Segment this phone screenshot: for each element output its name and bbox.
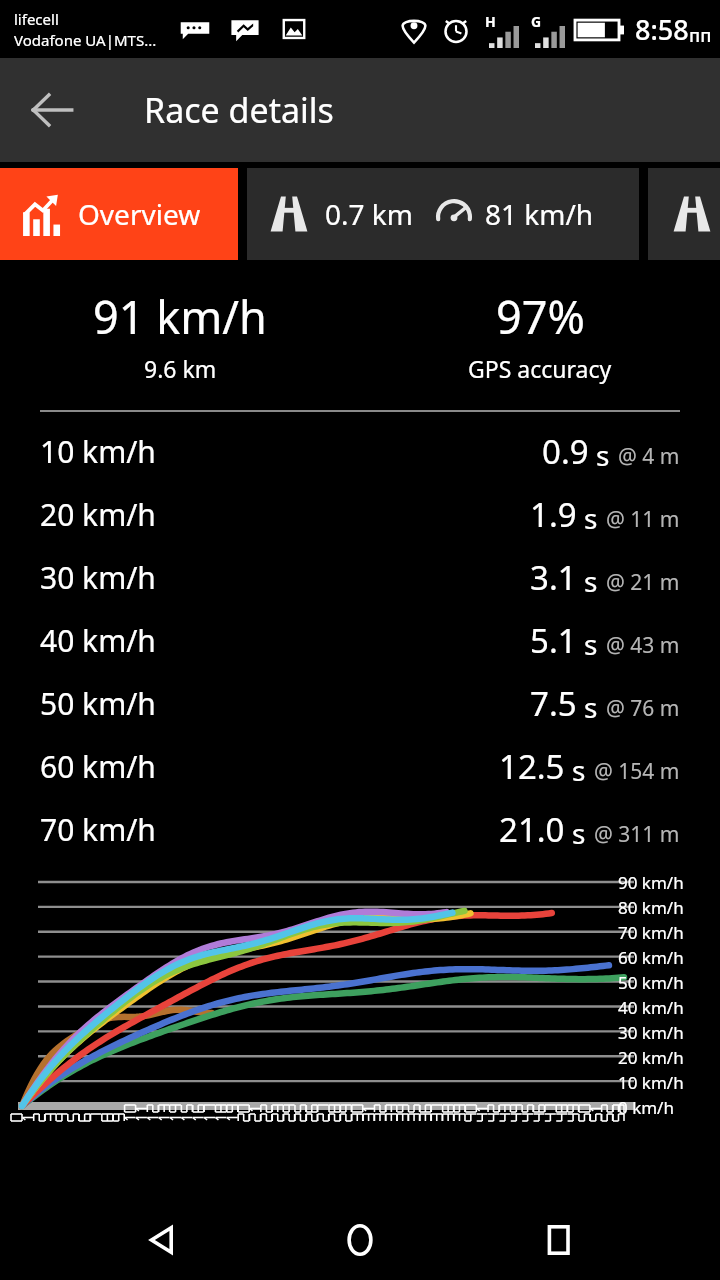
staticText: 50 km/h xyxy=(618,971,684,994)
staticText: s xyxy=(584,688,598,726)
staticText: 20 km/h xyxy=(618,1046,684,1069)
button[interactable]: 0.7 km xyxy=(247,168,639,260)
staticText: s xyxy=(584,562,598,600)
button[interactable]: 40 km/h xyxy=(0,609,720,672)
staticText: lifecell xyxy=(14,9,59,29)
button[interactable]: 50 km/h xyxy=(0,672,720,735)
staticText: Vodafone UA|MTS... xyxy=(14,30,157,50)
staticText: Race details xyxy=(144,87,334,133)
button[interactable]: Home xyxy=(322,1202,398,1278)
staticText: 30 km/h xyxy=(618,1021,684,1044)
staticText: @ 4 m xyxy=(618,442,680,471)
staticText: @ 21 m xyxy=(606,568,680,597)
staticText: 97% xyxy=(496,286,585,347)
staticText: s xyxy=(596,436,610,474)
staticText: s xyxy=(584,499,598,537)
staticText: 9.6 km xyxy=(144,353,217,384)
staticText: 10 km/h xyxy=(40,431,156,472)
staticText: 60 km/h xyxy=(618,946,684,969)
button[interactable]: 60 km/h xyxy=(0,735,720,798)
staticText: s xyxy=(572,751,586,789)
button[interactable]: 10 km/h xyxy=(0,420,720,483)
staticText: 81 km/h xyxy=(485,195,594,233)
button[interactable]: Back xyxy=(20,78,84,142)
button[interactable]: 70 km/h xyxy=(0,798,720,861)
staticText: 70 km/h xyxy=(618,921,684,944)
staticText: 3.1 xyxy=(530,555,577,600)
button[interactable]: Back xyxy=(123,1202,199,1278)
staticText: 21.0 xyxy=(499,807,565,852)
staticText: 80 km/h xyxy=(618,896,684,919)
staticText: 91 km/h xyxy=(93,286,267,347)
button[interactable]: Overview xyxy=(0,168,238,260)
staticText: 1.9 xyxy=(530,492,577,537)
staticText: пп xyxy=(689,23,712,48)
button[interactable]: 20 km/h xyxy=(0,483,720,546)
staticText: 10 km/h xyxy=(618,1071,684,1094)
staticText: 7.5 xyxy=(530,681,577,726)
staticText: @ 43 m xyxy=(606,631,680,660)
staticText: 30 km/h xyxy=(40,557,156,598)
staticText: 50 km/h xyxy=(40,683,156,724)
button[interactable]: Next segment xyxy=(648,168,720,260)
staticText: 0.9 xyxy=(542,429,589,474)
staticText: H xyxy=(485,12,496,31)
staticText: 20 km/h xyxy=(40,494,156,535)
staticText: @ 76 m xyxy=(606,694,680,723)
button[interactable]: Recent apps xyxy=(521,1202,597,1278)
staticText: s xyxy=(584,625,598,663)
staticText: G xyxy=(531,12,542,31)
staticText: 60 km/h xyxy=(40,746,156,787)
staticText: 12.5 xyxy=(499,744,565,789)
staticText: 0 km/h xyxy=(618,1096,674,1119)
staticText: 8:58 xyxy=(635,11,689,48)
staticText: 40 km/h xyxy=(618,996,684,1019)
staticText: Overview xyxy=(78,195,201,233)
staticText: 40 km/h xyxy=(40,620,156,661)
button[interactable]: 30 km/h xyxy=(0,546,720,609)
staticText: @ 154 m xyxy=(594,757,680,786)
staticText: @ 311 m xyxy=(594,820,680,849)
staticText: 70 km/h xyxy=(40,809,156,850)
staticText: GPS accuracy xyxy=(468,353,612,384)
staticText: 0.7 km xyxy=(325,195,413,233)
staticText: 5.1 xyxy=(530,618,577,663)
staticText: @ 11 m xyxy=(606,505,680,534)
staticText: s xyxy=(572,814,586,852)
staticText: 90 km/h xyxy=(618,871,684,894)
